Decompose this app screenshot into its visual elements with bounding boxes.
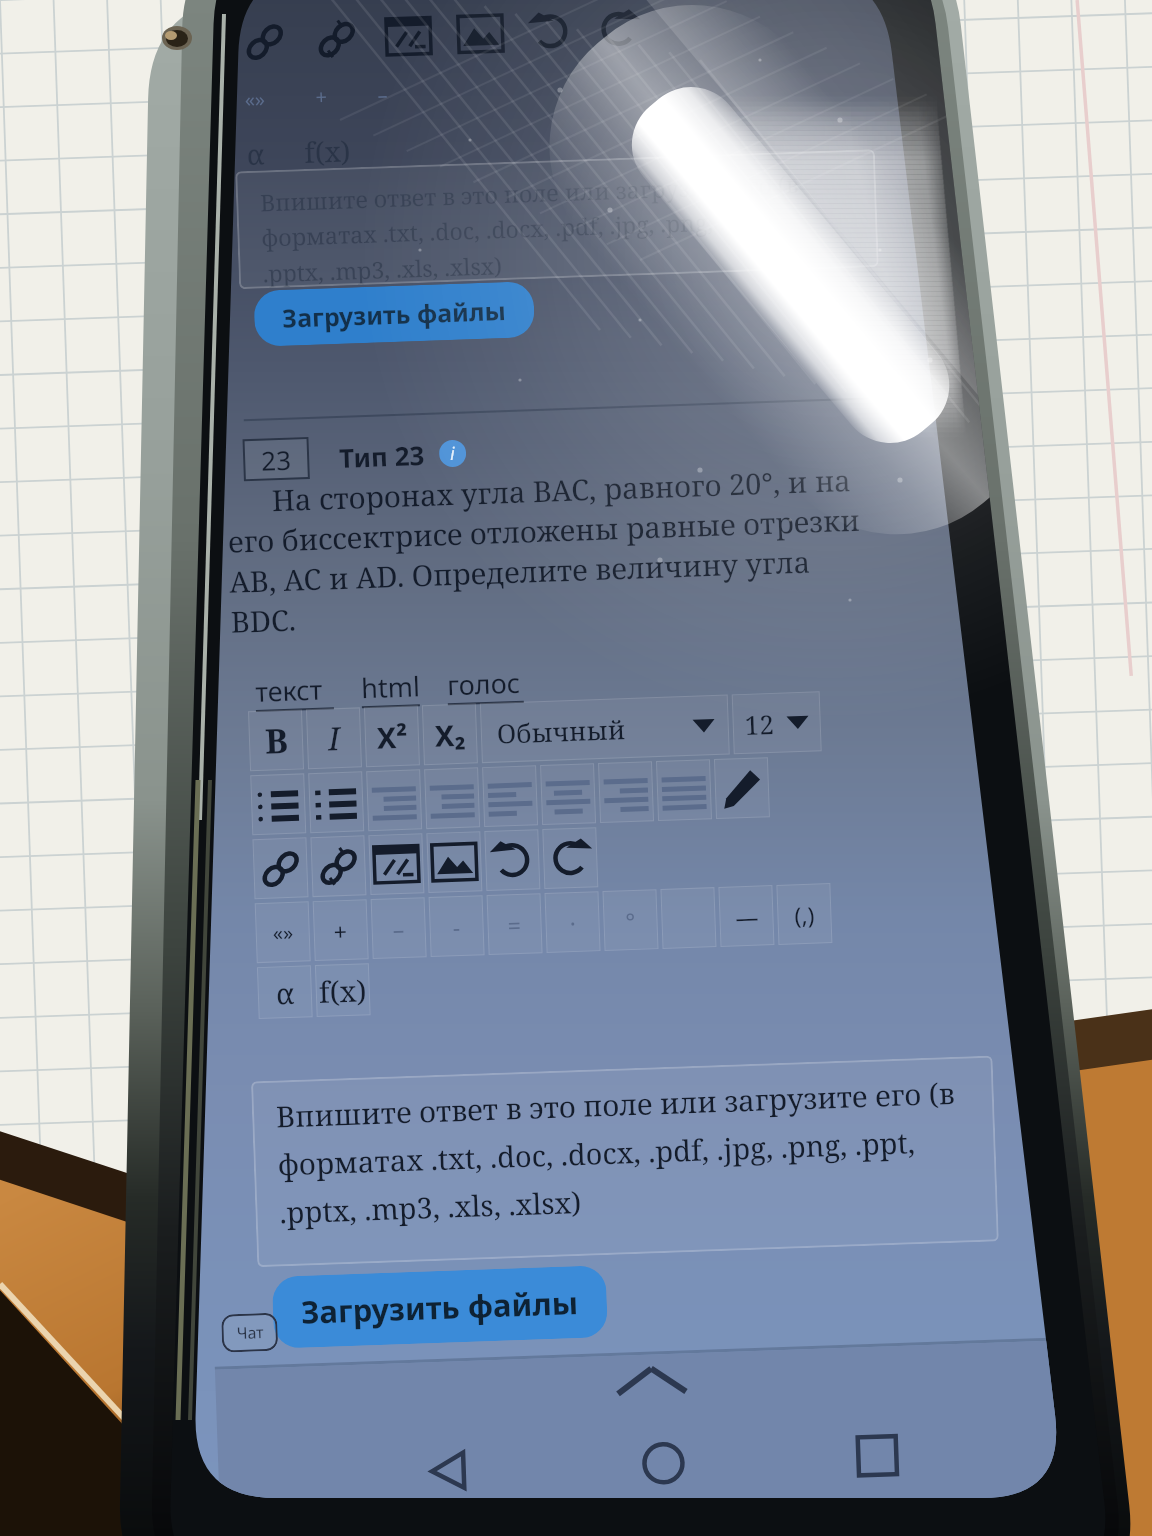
button[interactable]: Впишите ответ в это поле или загрузите е… <box>251 1055 999 1267</box>
staticText: Впишите ответ в это поле или загрузите е… <box>275 1073 959 1231</box>
staticText: I <box>327 716 341 760</box>
button[interactable]: α <box>257 965 313 1019</box>
staticText: f(x) <box>304 131 351 171</box>
button[interactable]: f(x) <box>315 963 371 1017</box>
button[interactable]: «» <box>255 901 311 963</box>
button[interactable]: Обычный <box>480 694 730 763</box>
button[interactable]: I <box>306 707 362 769</box>
staticText: + <box>333 915 348 946</box>
staticText: α <box>246 134 265 173</box>
button[interactable]: 12 <box>732 691 822 754</box>
button[interactable]: Информация <box>439 439 466 467</box>
staticText: «» <box>272 919 294 946</box>
button[interactable]: 23 <box>242 437 310 481</box>
staticText: Впишите ответ в это поле или загрузите е… <box>260 168 802 288</box>
button[interactable]: · <box>544 891 601 953</box>
button[interactable]: X₂ <box>422 703 478 765</box>
button[interactable]: Загрузить файлы <box>272 1265 608 1349</box>
button[interactable]: Убрать ссылку <box>310 835 366 897</box>
button[interactable]: Отменить <box>484 829 540 891</box>
button[interactable]: Маркированный список <box>250 773 306 835</box>
staticText: Загрузить файлы <box>282 293 507 335</box>
button[interactable]: голос <box>446 663 530 705</box>
staticText: – <box>392 913 405 944</box>
button[interactable]: По центру <box>540 763 596 825</box>
staticText: Чат <box>236 1321 264 1344</box>
button[interactable]: Впишите ответ в это поле или загрузите е… <box>235 149 879 289</box>
staticText: текст <box>255 671 323 710</box>
staticText: «» <box>244 85 266 113</box>
staticText: · <box>569 907 577 938</box>
staticText: голос <box>446 664 521 703</box>
staticText: Загрузить файлы <box>300 1281 579 1333</box>
button[interactable]: = <box>486 893 543 955</box>
button[interactable]: + <box>313 899 369 961</box>
button[interactable]: Обзор <box>841 1420 913 1492</box>
staticText: 12 <box>744 706 775 742</box>
staticText: + <box>315 83 328 110</box>
button[interactable]: (,) <box>776 883 832 945</box>
button[interactable]: html <box>361 667 426 708</box>
button[interactable]: текст <box>255 670 340 712</box>
button[interactable]: По ширине <box>656 759 712 821</box>
button[interactable]: Выделение цветом <box>714 757 770 819</box>
button[interactable]: Нумерованный список <box>308 771 364 833</box>
button[interactable]: X² <box>364 705 420 767</box>
button[interactable]: — <box>718 885 774 947</box>
button[interactable]: Увеличить отступ <box>424 767 480 829</box>
button[interactable]: B <box>248 709 304 771</box>
staticText: Обычный <box>496 711 626 751</box>
staticText: — <box>735 901 759 932</box>
staticText: 23 <box>261 442 292 478</box>
staticText: f(x) <box>318 970 367 1011</box>
staticText: = <box>507 909 522 940</box>
staticText: B <box>264 717 289 764</box>
button[interactable]: ° <box>602 889 659 951</box>
button[interactable]: Повторить <box>542 827 598 889</box>
staticText: X₂ <box>434 715 466 755</box>
staticText: (,) <box>794 899 815 930</box>
button[interactable]: Загрузить файлы <box>253 281 535 347</box>
staticText: Тип 23 <box>339 437 426 475</box>
staticText: На сторонах угла BAC, равного 20°, и на … <box>226 455 991 642</box>
button[interactable]: По правому краю <box>598 761 654 823</box>
staticText: – <box>377 81 388 108</box>
button[interactable]: Исходный код <box>368 833 424 895</box>
button[interactable]: – <box>371 897 427 959</box>
button[interactable]: Вставить ссылку <box>252 837 308 899</box>
staticText: ° <box>625 905 636 936</box>
staticText: i <box>450 441 456 466</box>
button[interactable]: Домой <box>627 1427 700 1498</box>
button[interactable]: По левому краю <box>482 765 538 827</box>
button[interactable] <box>660 887 716 949</box>
staticText: X² <box>376 717 409 757</box>
staticText: - <box>452 911 461 942</box>
staticText: α <box>275 973 295 1012</box>
button[interactable]: Уменьшить отступ <box>366 769 422 831</box>
button[interactable]: - <box>429 895 485 957</box>
staticText: html <box>361 667 421 706</box>
button[interactable]: Вставить изображение <box>426 831 482 893</box>
button[interactable]: Чат <box>221 1313 278 1352</box>
button[interactable]: Назад <box>413 1434 486 1498</box>
